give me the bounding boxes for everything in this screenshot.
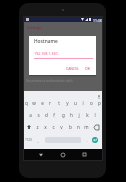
staticText: ?123 — [25, 138, 32, 142]
button[interactable]: v — [55, 123, 67, 131]
staticText: 11:38 — [93, 18, 102, 23]
staticText: s — [37, 112, 40, 118]
button[interactable]: i — [77, 99, 89, 107]
staticText: k — [86, 112, 89, 118]
button[interactable]: z — [31, 123, 43, 131]
staticText: OK — [85, 66, 90, 71]
staticText: w — [32, 100, 36, 106]
button[interactable]: p — [93, 99, 105, 107]
staticText: c — [52, 124, 55, 130]
staticText: e — [41, 100, 44, 106]
button[interactable]: k — [81, 111, 93, 119]
staticText: Hostname to authenticate with — [26, 79, 73, 83]
staticText: q — [25, 100, 28, 106]
button[interactable]: Home — [60, 152, 65, 157]
button[interactable]: Shift — [25, 123, 33, 131]
button[interactable]: f — [48, 111, 60, 119]
staticText: b — [69, 124, 72, 130]
button[interactable]: t — [53, 99, 65, 107]
button[interactable]: e — [36, 99, 48, 107]
staticText: n — [77, 124, 80, 130]
staticText: Settings — [27, 25, 41, 30]
button[interactable]: c — [47, 123, 59, 131]
staticText: u — [74, 100, 77, 106]
button[interactable]: Voice input — [96, 94, 102, 100]
button[interactable]: Recent apps — [82, 152, 87, 157]
button[interactable]: u — [69, 99, 81, 107]
staticText: f — [53, 112, 55, 118]
staticText: m — [84, 124, 89, 130]
staticText: CANCEL — [66, 66, 79, 71]
staticText: o — [90, 100, 93, 106]
button[interactable]: x — [39, 123, 51, 131]
button[interactable]: m — [80, 123, 92, 131]
button[interactable]: q — [20, 99, 32, 107]
staticText: r — [49, 100, 51, 106]
button[interactable]: g — [57, 111, 69, 119]
button[interactable]: . — [81, 136, 93, 144]
button[interactable]: j — [73, 111, 85, 119]
staticText: y — [66, 100, 69, 106]
staticText: . — [86, 138, 88, 143]
staticText: t — [58, 100, 60, 106]
button[interactable]: , — [32, 136, 44, 144]
button[interactable]: s — [32, 111, 44, 119]
staticText: a — [29, 112, 32, 118]
staticText: g — [62, 112, 65, 118]
button[interactable]: n — [72, 123, 84, 131]
staticText: p — [98, 100, 101, 106]
staticText: j — [78, 112, 80, 118]
button[interactable]: l — [89, 111, 101, 119]
button[interactable]: h — [65, 111, 77, 119]
staticText: x — [44, 124, 47, 130]
button[interactable]: d — [40, 111, 52, 119]
button[interactable]: r — [44, 99, 56, 107]
button[interactable]: OK — [85, 66, 90, 71]
button[interactable]: Back — [38, 152, 43, 157]
staticText: Hostname — [34, 38, 58, 45]
button[interactable]: Enter — [92, 137, 98, 143]
staticText: , — [37, 138, 39, 143]
staticText: l — [94, 112, 96, 118]
staticText: h — [70, 112, 73, 118]
button[interactable]: Backspace — [92, 123, 100, 131]
staticText: z — [36, 124, 39, 130]
button[interactable]: ?123 — [22, 136, 34, 144]
button[interactable]: y — [61, 99, 73, 107]
button[interactable]: o — [85, 99, 97, 107]
button[interactable]: a — [24, 111, 36, 119]
staticText: i — [82, 100, 84, 106]
staticText: v — [60, 124, 63, 130]
button[interactable]: b — [64, 123, 76, 131]
button[interactable]: CANCEL — [66, 66, 79, 71]
staticText: d — [45, 112, 48, 118]
button[interactable]: w — [28, 99, 40, 107]
staticText: 192.168.1.330 — [34, 51, 58, 56]
